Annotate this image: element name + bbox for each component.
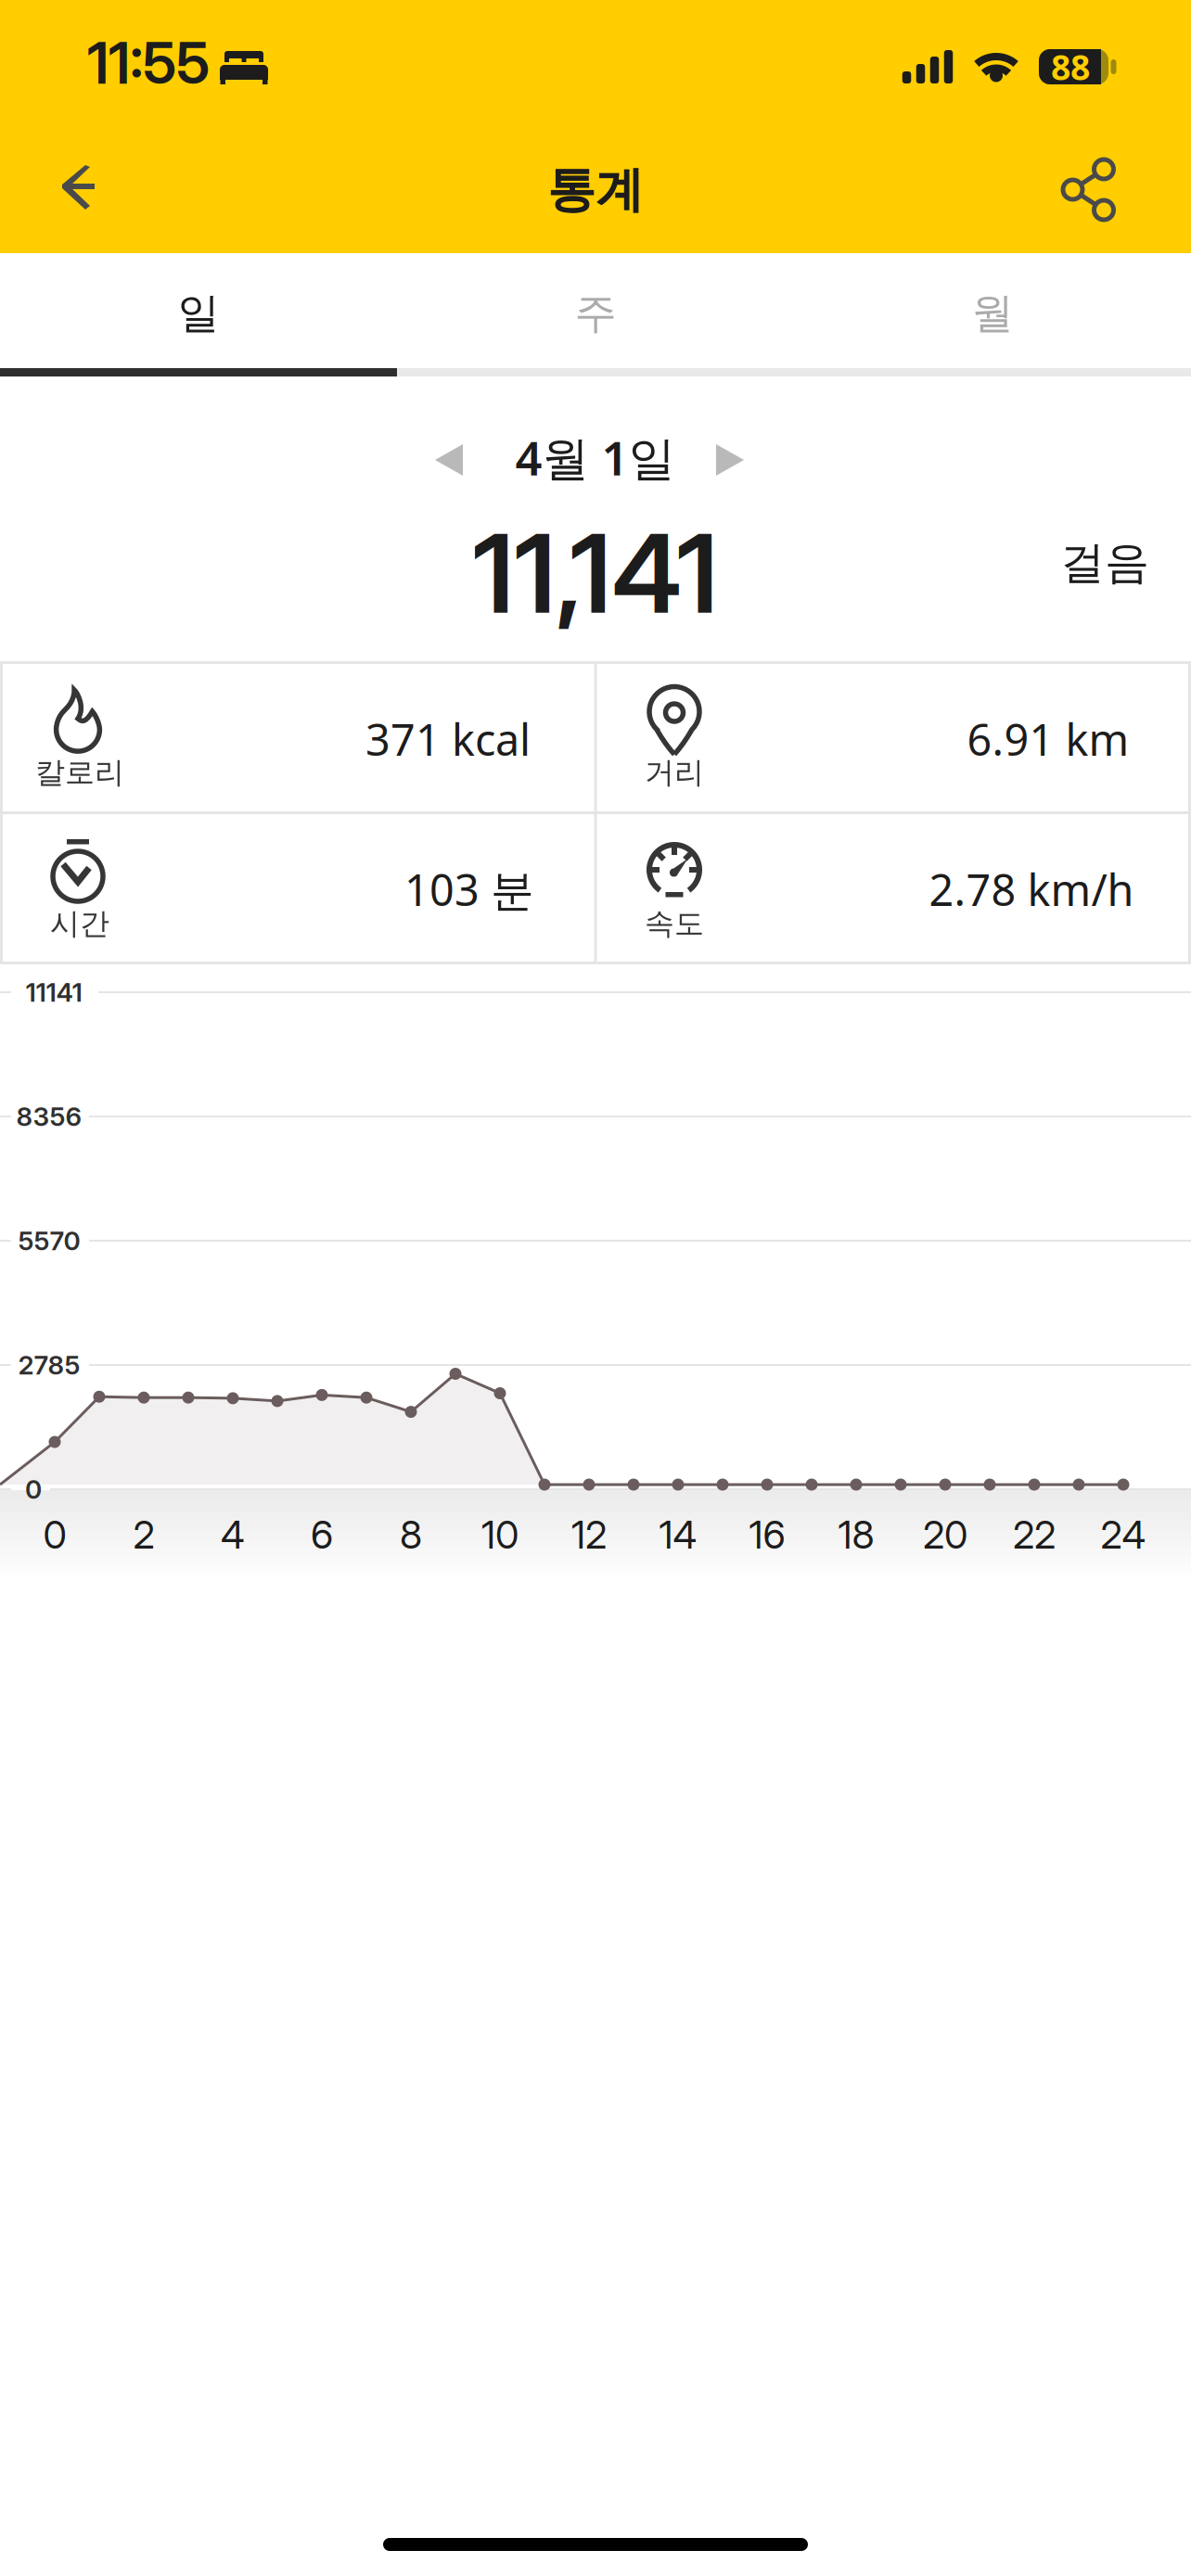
staticText: 0 xyxy=(25,1474,42,1505)
staticText: 11,141 xyxy=(473,507,718,639)
button[interactable]: 월 xyxy=(794,256,1191,371)
staticText: 2785 xyxy=(18,1349,80,1381)
staticText: 12 xyxy=(571,1511,607,1558)
staticText: 20 xyxy=(923,1511,967,1558)
staticText: 통계 xyxy=(547,161,644,220)
staticText: 371 kcal xyxy=(365,710,531,768)
staticText: 22 xyxy=(1013,1511,1056,1558)
button[interactable] xyxy=(1044,140,1135,240)
button[interactable]: 주 xyxy=(397,256,794,371)
staticText: 18 xyxy=(838,1511,874,1558)
staticText: 10 xyxy=(481,1511,519,1558)
staticText: 6 xyxy=(311,1511,333,1558)
staticText: 거리 xyxy=(645,754,704,791)
button[interactable] xyxy=(424,433,474,487)
staticText: 24 xyxy=(1101,1511,1146,1558)
staticText: 14 xyxy=(659,1511,697,1558)
staticText: 8356 xyxy=(16,1101,82,1132)
staticText: 걸음 xyxy=(1060,536,1149,590)
staticText: 2 xyxy=(133,1511,154,1558)
staticText: 4월 1일 xyxy=(515,426,676,488)
staticText: 2.78 km/h xyxy=(929,861,1134,918)
staticText: 4 xyxy=(221,1511,245,1558)
staticText: 8 xyxy=(400,1511,422,1558)
staticText: 일 xyxy=(178,288,219,339)
button[interactable] xyxy=(23,147,114,228)
button[interactable] xyxy=(705,433,755,487)
button[interactable]: 일 xyxy=(0,256,397,371)
staticText: 11:55 xyxy=(87,29,210,97)
staticText: 11141 xyxy=(26,977,82,1008)
staticText: 88 xyxy=(1051,44,1090,90)
staticText: 16 xyxy=(749,1511,785,1558)
staticText: 103 분 xyxy=(404,861,534,918)
staticText: 월 xyxy=(972,288,1013,339)
staticText: 시간 xyxy=(50,905,109,942)
staticText: 6.91 km xyxy=(967,710,1129,768)
staticText: 주 xyxy=(575,288,616,339)
staticText: 0 xyxy=(43,1511,66,1558)
staticText: 칼로리 xyxy=(35,754,124,791)
staticText: 5570 xyxy=(18,1225,80,1256)
staticText: 속도 xyxy=(645,905,704,942)
